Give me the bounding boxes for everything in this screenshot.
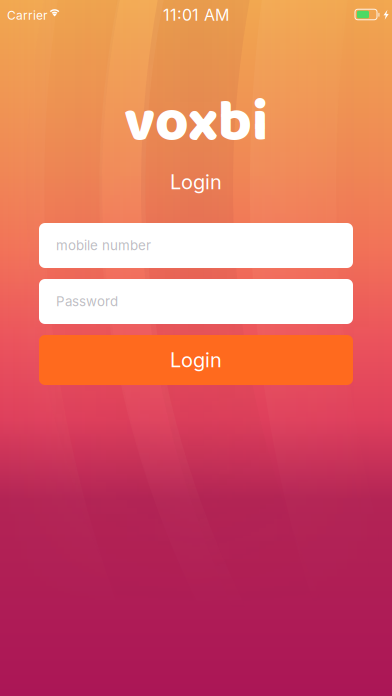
staticText: Password: [56, 293, 118, 309]
staticText: Login: [170, 170, 222, 194]
staticText: voxbi: [124, 77, 268, 169]
staticText: Login: [170, 348, 222, 372]
staticText: Carrier: [7, 8, 48, 22]
button[interactable]: Login: [39, 335, 353, 385]
staticText: mobile number: [56, 237, 151, 253]
staticText: 11:01 AM: [163, 5, 229, 25]
